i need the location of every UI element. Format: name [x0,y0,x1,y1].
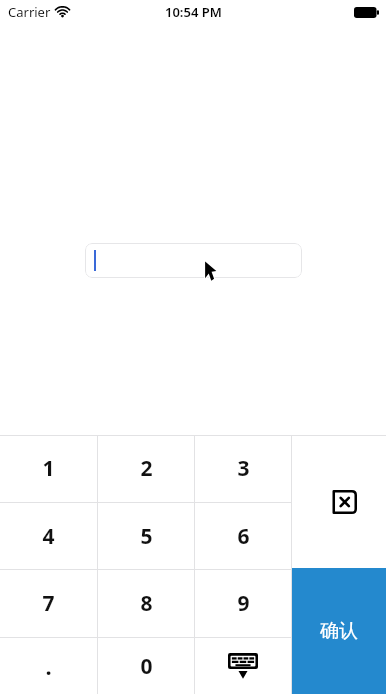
button[interactable]: 6 [195,503,291,569]
staticText: 9 [237,589,250,618]
button[interactable]: Hide keyboard [195,638,291,694]
button[interactable]: . [0,638,97,694]
button[interactable]: 9 [195,570,291,637]
staticText: 3 [237,454,250,483]
staticText: 6 [237,522,250,551]
staticText: 确认 [320,619,358,643]
button[interactable] [85,243,302,278]
button[interactable]: 1 [0,435,97,502]
button[interactable]: 3 [195,435,291,502]
button[interactable]: 0 [98,638,194,694]
button[interactable]: 2 [98,435,194,502]
staticText: 5 [140,522,153,551]
button[interactable]: 确认 [292,568,386,694]
staticText: 4 [42,522,55,551]
staticText: . [45,651,52,681]
staticText: 7 [42,589,55,618]
staticText: 8 [140,589,153,618]
button[interactable]: Backspace [292,435,386,568]
staticText: Carrier [8,3,51,21]
staticText: 0 [140,652,153,681]
button[interactable]: 5 [98,503,194,569]
staticText: 10:54 PM [165,3,222,21]
button[interactable]: 4 [0,503,97,569]
button[interactable]: 7 [0,570,97,637]
button[interactable]: 8 [98,570,194,637]
staticText: 1 [42,454,55,483]
staticText: 2 [140,454,153,483]
